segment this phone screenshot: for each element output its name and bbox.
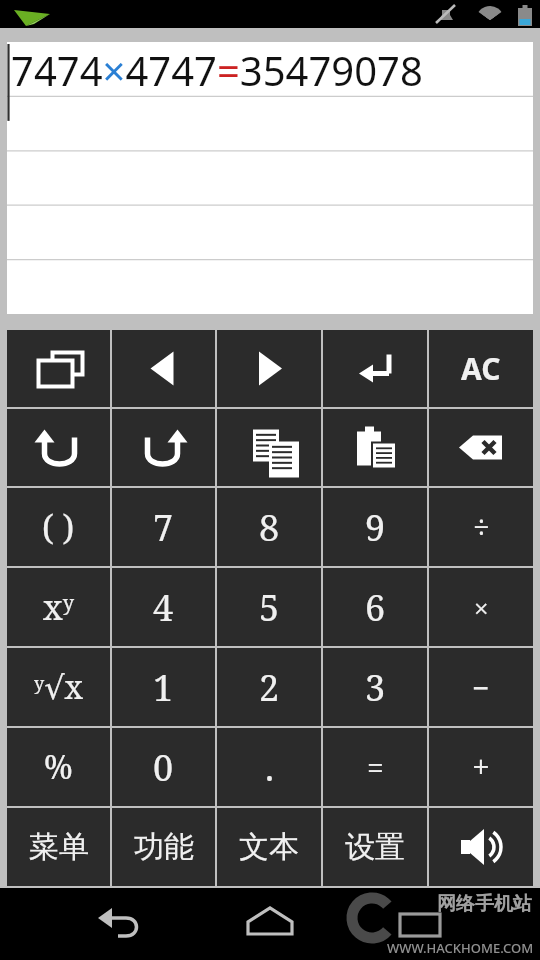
button[interactable]: Redo xyxy=(112,409,215,486)
button[interactable]: 4 xyxy=(112,568,215,646)
staticText: 5 xyxy=(259,583,280,632)
staticText: AC xyxy=(461,348,501,389)
staticText: 设置 xyxy=(345,828,405,866)
button[interactable]: 7474×4747=35479078 xyxy=(7,42,533,314)
staticText: × xyxy=(474,590,489,625)
button[interactable]: 1 xyxy=(112,648,215,726)
button[interactable]: = xyxy=(323,728,427,806)
button[interactable]: Move left xyxy=(112,330,215,407)
staticText: 文本 xyxy=(239,828,299,866)
staticText: 网络手机站 xyxy=(437,892,532,916)
staticText: 7474×4747=35479078 xyxy=(11,43,423,97)
button[interactable]: % xyxy=(7,728,110,806)
staticText: 4 xyxy=(153,583,174,632)
staticText: . xyxy=(265,743,274,792)
button[interactable]: 7 xyxy=(112,488,215,566)
button[interactable]: 3 xyxy=(323,648,427,726)
staticText: y√x xyxy=(34,665,84,709)
staticText: 菜单 xyxy=(29,828,89,866)
button[interactable]: AC xyxy=(429,330,533,407)
button[interactable]: 功能 xyxy=(112,808,215,886)
staticText: 功能 xyxy=(134,828,194,866)
button[interactable]: 6 xyxy=(323,568,427,646)
button[interactable]: Copy xyxy=(217,409,321,486)
button[interactable]: − xyxy=(429,648,533,726)
staticText: 2 xyxy=(259,663,280,712)
button[interactable]: y√x xyxy=(7,648,110,726)
button[interactable]: + xyxy=(429,728,533,806)
button[interactable]: Paste xyxy=(323,409,427,486)
button[interactable]: × xyxy=(429,568,533,646)
staticText: ÷ xyxy=(473,507,490,548)
button[interactable]: ( ) xyxy=(7,488,110,566)
staticText: − xyxy=(472,667,490,708)
button[interactable]: 设置 xyxy=(323,808,427,886)
button[interactable]: 0 xyxy=(112,728,215,806)
button[interactable]: . xyxy=(217,728,321,806)
button[interactable]: 2 xyxy=(217,648,321,726)
button[interactable]: 5 xyxy=(217,568,321,646)
staticText: = xyxy=(367,747,384,788)
staticText: % xyxy=(44,745,73,789)
button[interactable]: Undo xyxy=(7,409,110,486)
button[interactable]: 8 xyxy=(217,488,321,566)
button[interactable]: Windows xyxy=(7,330,110,407)
staticText: 3 xyxy=(365,663,386,712)
button[interactable]: Move right xyxy=(217,330,321,407)
button[interactable]: 9 xyxy=(323,488,427,566)
button[interactable]: xy xyxy=(7,568,110,646)
button[interactable]: Backspace xyxy=(429,409,533,486)
button[interactable]: 文本 xyxy=(217,808,321,886)
staticText: 7 xyxy=(153,503,174,552)
button[interactable]: 菜单 xyxy=(7,808,110,886)
staticText: 8 xyxy=(259,503,280,552)
staticText: + xyxy=(472,745,490,789)
button[interactable]: Enter xyxy=(323,330,427,407)
staticText: WWW.HACKHOME.COM xyxy=(387,939,534,957)
staticText: 1 xyxy=(153,663,174,712)
staticText: xy xyxy=(43,584,74,630)
button[interactable]: Sound xyxy=(429,808,533,886)
button[interactable]: ÷ xyxy=(429,488,533,566)
staticText: 0 xyxy=(153,743,174,792)
staticText: 9 xyxy=(365,503,386,552)
staticText: ( ) xyxy=(42,504,75,550)
staticText: 6 xyxy=(365,583,386,632)
